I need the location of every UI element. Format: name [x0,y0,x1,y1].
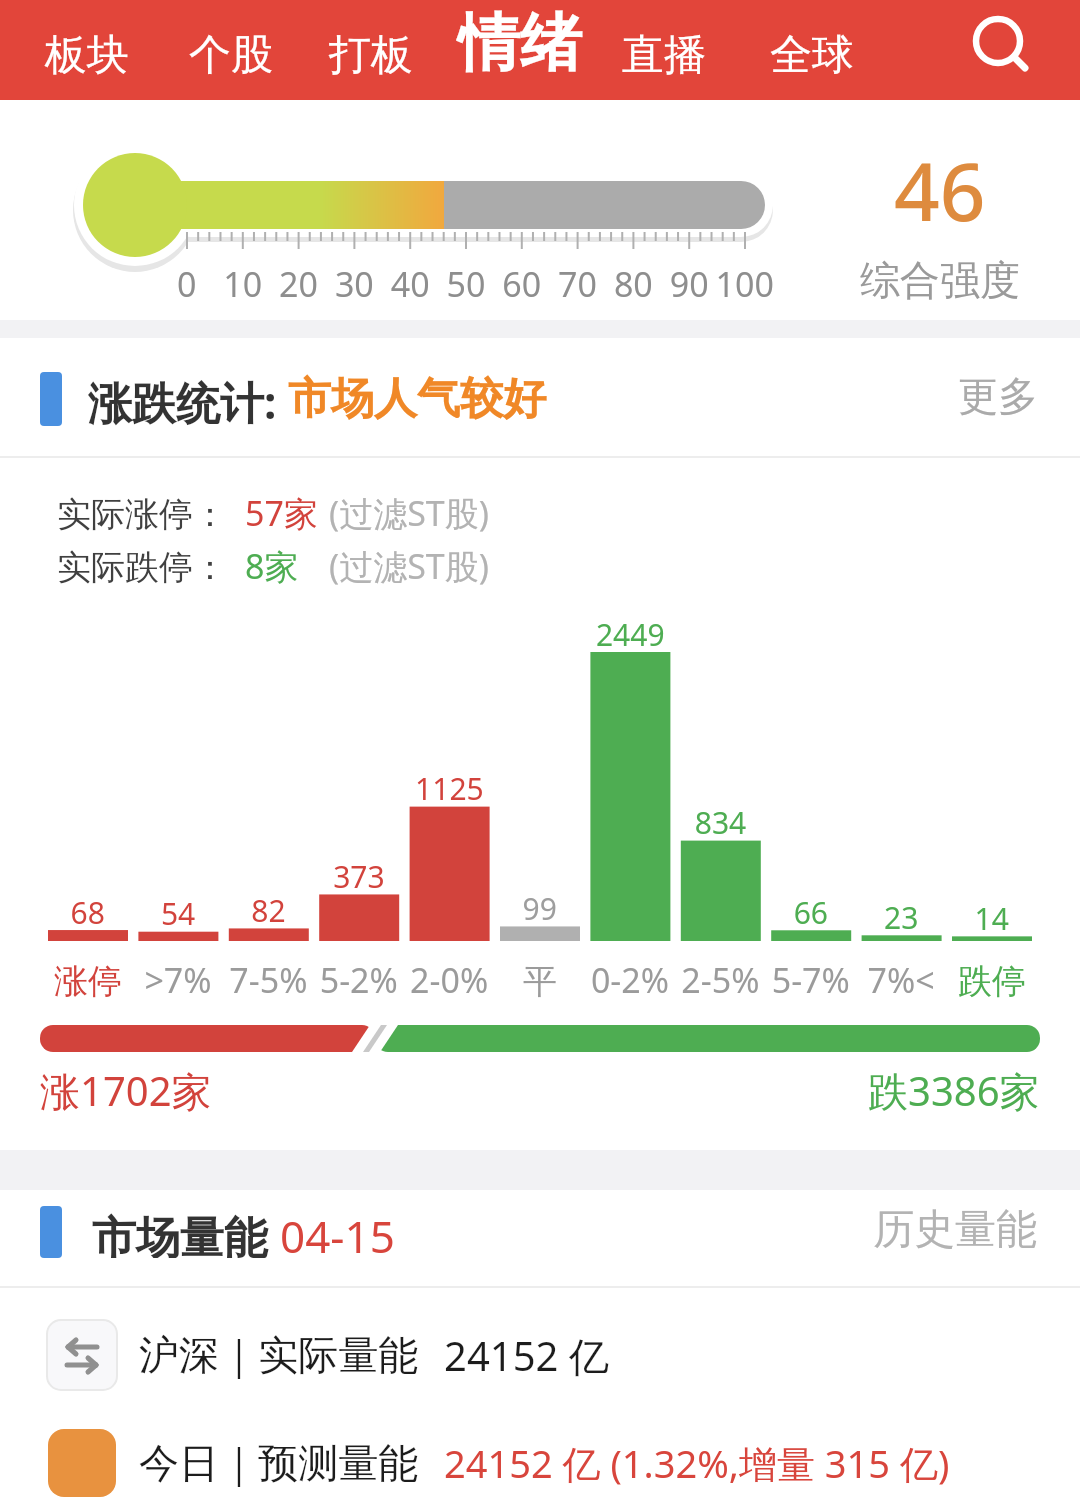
staticText: 涨跌统计: [88,372,288,426]
button[interactable]: 直播 [622,29,706,82]
button[interactable]: 沪深｜实际量能 [47,1319,1080,1391]
staticText: 24152 亿 (1.32%,增量 315 亿) [444,1437,950,1489]
staticText: 沪深｜实际量能 [139,1330,419,1380]
staticText: 历史量能 [873,1204,1037,1256]
staticText: 24152 亿 [444,1328,609,1383]
button[interactable]: 板块 [45,29,129,82]
button[interactable]: 今日｜预测量能 [47,1427,1080,1499]
button[interactable]: 更多 [945,368,1050,424]
button[interactable]: 历史量能 [865,1202,1045,1258]
button[interactable] [964,13,1038,87]
staticText: 市场量能 [92,1206,280,1258]
button[interactable]: 情绪 [458,4,582,82]
button[interactable]: 打板 [329,29,413,82]
button[interactable]: 个股 [189,29,273,82]
staticText: 市场人气较好 [288,372,546,426]
button[interactable]: 全球 [770,29,854,82]
staticText: 04-15 [280,1206,395,1258]
staticText: 更多 [958,371,1038,421]
staticText: 今日｜预测量能 [139,1438,419,1488]
